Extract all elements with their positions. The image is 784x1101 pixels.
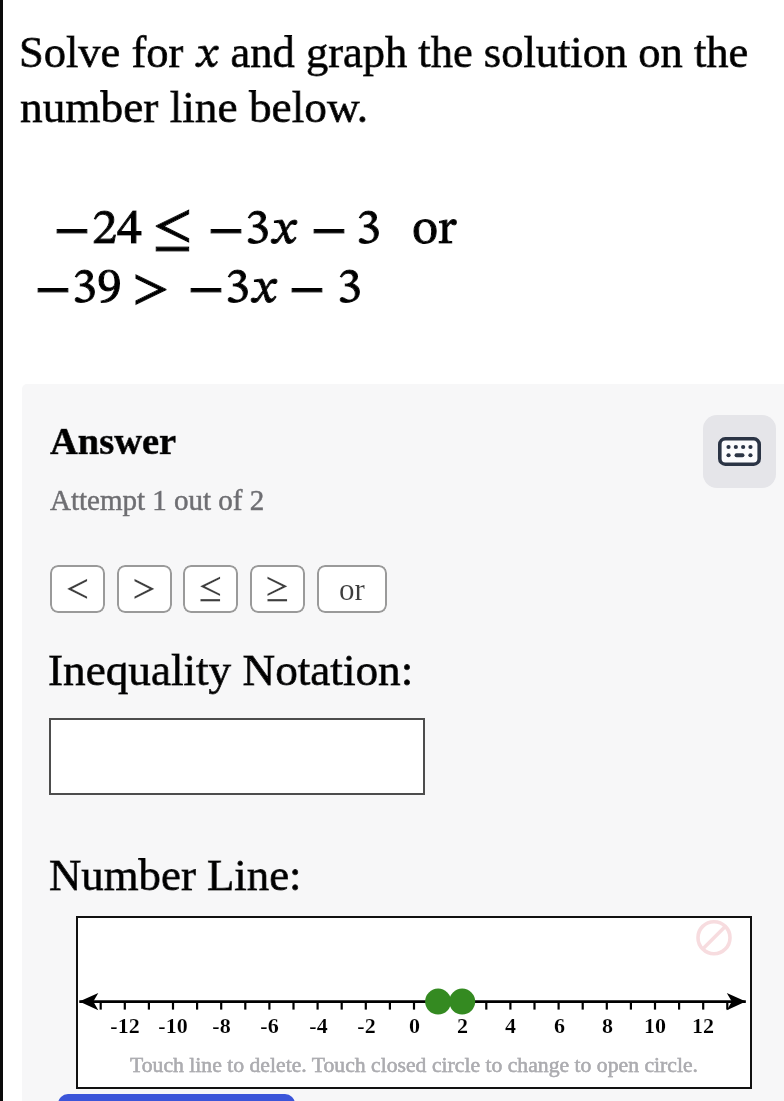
staticText: Inequality Notation:	[48, 645, 414, 695]
staticText: 3	[356, 205, 381, 255]
staticText: 10	[644, 1013, 666, 1037]
staticText: -2	[357, 1013, 376, 1037]
staticText: ≤	[198, 572, 223, 606]
staticText: 8	[602, 1013, 613, 1037]
staticText: −	[54, 206, 90, 256]
staticText: ≥	[265, 572, 290, 606]
staticText: >	[132, 572, 157, 606]
staticText: −	[289, 265, 325, 315]
staticText: 3𝑥	[245, 205, 298, 255]
staticText: >	[132, 263, 170, 315]
staticText: −	[311, 206, 347, 256]
staticText: −	[54, 206, 90, 256]
staticText: Number Line:	[49, 850, 302, 900]
button[interactable]: or	[317, 565, 387, 613]
staticText: or	[412, 205, 457, 255]
staticText: or	[412, 205, 457, 255]
staticText: 3𝑥	[245, 205, 298, 255]
staticText: −	[35, 265, 71, 315]
staticText: 3	[337, 264, 362, 314]
staticText: −	[188, 265, 224, 315]
staticText: -10	[158, 1013, 188, 1037]
staticText: Touch line to delete. Touch closed circl…	[74, 1053, 754, 1077]
staticText: Attempt 1 out of 2	[50, 484, 265, 516]
staticText: 2	[457, 1013, 468, 1037]
staticText: Answer	[50, 420, 177, 463]
staticText: −	[35, 265, 71, 315]
staticText: -4	[309, 1013, 328, 1037]
staticText: number line below.	[20, 82, 369, 132]
staticText: ≤	[152, 202, 193, 258]
button[interactable]: Inequality notation answer field	[49, 718, 425, 795]
staticText: −	[289, 265, 325, 315]
staticText: −	[208, 206, 244, 256]
button[interactable]: Open math keyboard	[703, 415, 776, 488]
staticText: −	[311, 206, 347, 256]
staticText: 39	[72, 264, 122, 314]
staticText: 6	[554, 1013, 565, 1037]
staticText: Touch line to delete. Touch closed circl…	[74, 1053, 754, 1077]
button[interactable]: Submit answer	[58, 1094, 295, 1101]
staticText: Inequality Notation:	[48, 645, 414, 695]
staticText: >	[132, 263, 170, 315]
staticText: 39	[72, 264, 122, 314]
button[interactable]: ≤	[183, 565, 238, 613]
button[interactable]: <	[50, 565, 105, 613]
staticText: -8	[212, 1013, 231, 1037]
button[interactable]: Number line graph: touch line to plot	[76, 916, 752, 1089]
staticText: <	[65, 572, 90, 606]
button[interactable]: >	[117, 565, 172, 613]
staticText: 4	[505, 1013, 516, 1037]
staticText: Attempt 1 out of 2	[50, 484, 265, 516]
staticText: -6	[260, 1013, 279, 1037]
staticText: 3	[356, 205, 381, 255]
staticText: −	[208, 206, 244, 256]
staticText: -12	[110, 1013, 140, 1037]
staticText: 0	[409, 1013, 420, 1037]
staticText: 3	[337, 264, 362, 314]
staticText: Solve for 𝑥 and graph the solution on th…	[19, 27, 749, 77]
button[interactable]: ≥	[250, 565, 305, 613]
staticText: 24	[92, 205, 142, 255]
staticText: 3𝑥	[225, 264, 278, 314]
staticText: −	[188, 265, 224, 315]
staticText: number line below.	[20, 82, 369, 132]
staticText: Solve for 𝑥 and graph the solution on th…	[19, 27, 749, 77]
staticText: ≤	[152, 202, 193, 258]
staticText: Number Line:	[49, 850, 302, 900]
staticText: or	[339, 572, 365, 606]
staticText: 24	[92, 205, 142, 255]
staticText: 3𝑥	[225, 264, 278, 314]
staticText: 12	[692, 1013, 714, 1037]
staticText: Answer	[50, 420, 177, 463]
